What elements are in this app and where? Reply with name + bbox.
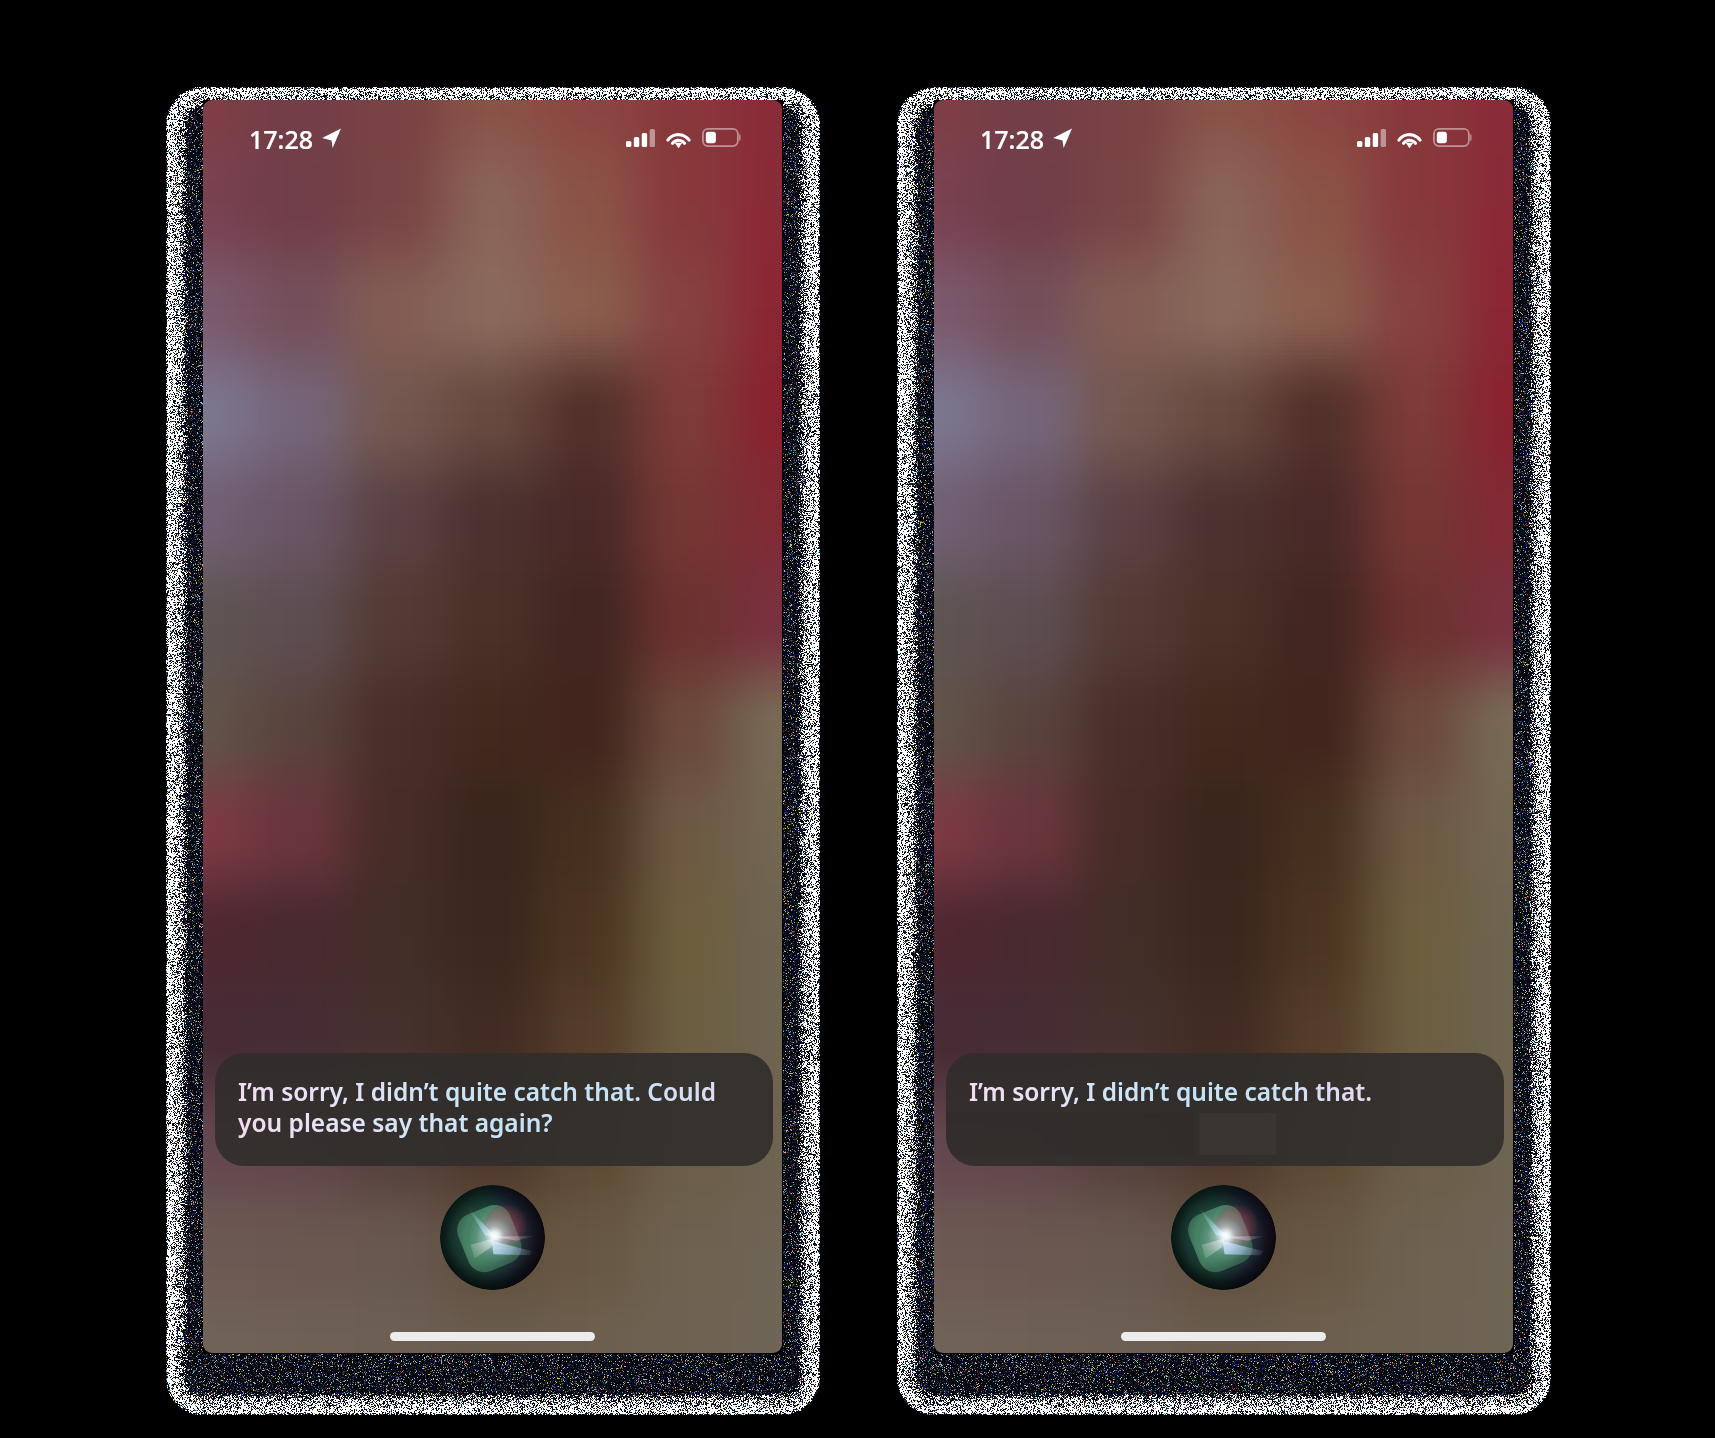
staticText: 17:28 xyxy=(980,122,1045,156)
staticText: I’m sorry, I didn’t quite catch that. Co… xyxy=(238,1075,763,1140)
button[interactable]: I’m sorry, I didn’t quite catch that. Co… xyxy=(215,1053,773,1166)
button[interactable]: Siri xyxy=(1171,1185,1276,1290)
staticText: 17:28 xyxy=(249,122,314,156)
staticText: I’m sorry, I didn’t quite catch that. xyxy=(969,1075,1372,1108)
button[interactable]: Siri xyxy=(440,1185,545,1290)
button[interactable]: I’m sorry, I didn’t quite catch that. xyxy=(946,1053,1504,1166)
